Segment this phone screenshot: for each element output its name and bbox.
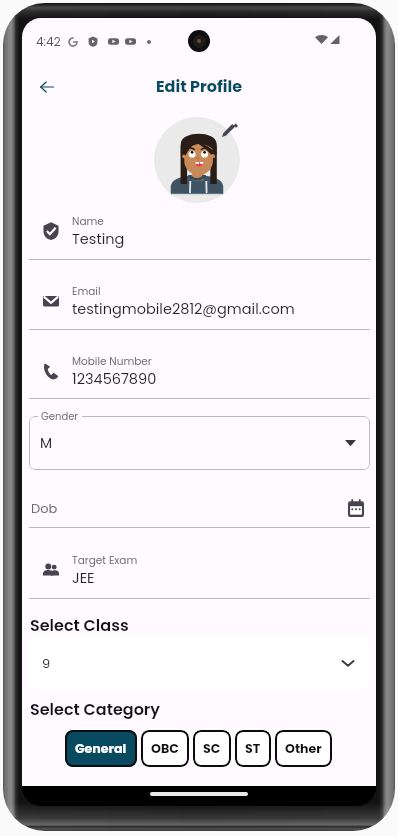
- staticText: Select Category: [30, 698, 161, 720]
- button[interactable]: General: [65, 730, 137, 767]
- staticText: Testing: [72, 229, 125, 249]
- button[interactable]: M: [29, 416, 370, 470]
- staticText: testingmobile2812@gmail.com: [72, 299, 295, 319]
- button[interactable]: OBC: [141, 730, 189, 767]
- button[interactable]: Other: [275, 730, 332, 767]
- button[interactable]: 9: [28, 636, 370, 690]
- button[interactable]: SC: [193, 730, 231, 767]
- staticText: Other: [285, 740, 322, 758]
- button[interactable]: Name: [29, 204, 370, 258]
- staticText: SC: [203, 740, 221, 758]
- button[interactable]: Email: [29, 274, 370, 328]
- button[interactable]: Profile photo: [154, 117, 240, 203]
- staticText: ST: [245, 740, 261, 758]
- staticText: 9: [42, 654, 51, 672]
- staticText: Select Class: [30, 614, 129, 636]
- button[interactable]: Target Exam: [29, 543, 370, 597]
- staticText: Email: [72, 284, 101, 299]
- staticText: Gender: [41, 409, 79, 423]
- staticText: Dob: [31, 499, 58, 517]
- button[interactable]: Mobile Number: [29, 344, 370, 398]
- staticText: 4:42: [36, 33, 61, 50]
- staticText: 1234567890: [72, 369, 157, 389]
- staticText: Target Exam: [72, 553, 138, 568]
- staticText: Name: [72, 214, 104, 229]
- staticText: JEE: [72, 568, 95, 588]
- staticText: Edit Profile: [22, 75, 376, 97]
- staticText: General: [75, 740, 127, 758]
- staticText: M: [40, 433, 53, 453]
- button[interactable]: ST: [235, 730, 271, 767]
- button[interactable]: Back: [28, 68, 65, 105]
- button[interactable]: Edit photo: [221, 121, 238, 138]
- staticText: Mobile Number: [72, 354, 152, 369]
- staticText: OBC: [151, 740, 179, 758]
- button[interactable]: Dob: [29, 489, 370, 527]
